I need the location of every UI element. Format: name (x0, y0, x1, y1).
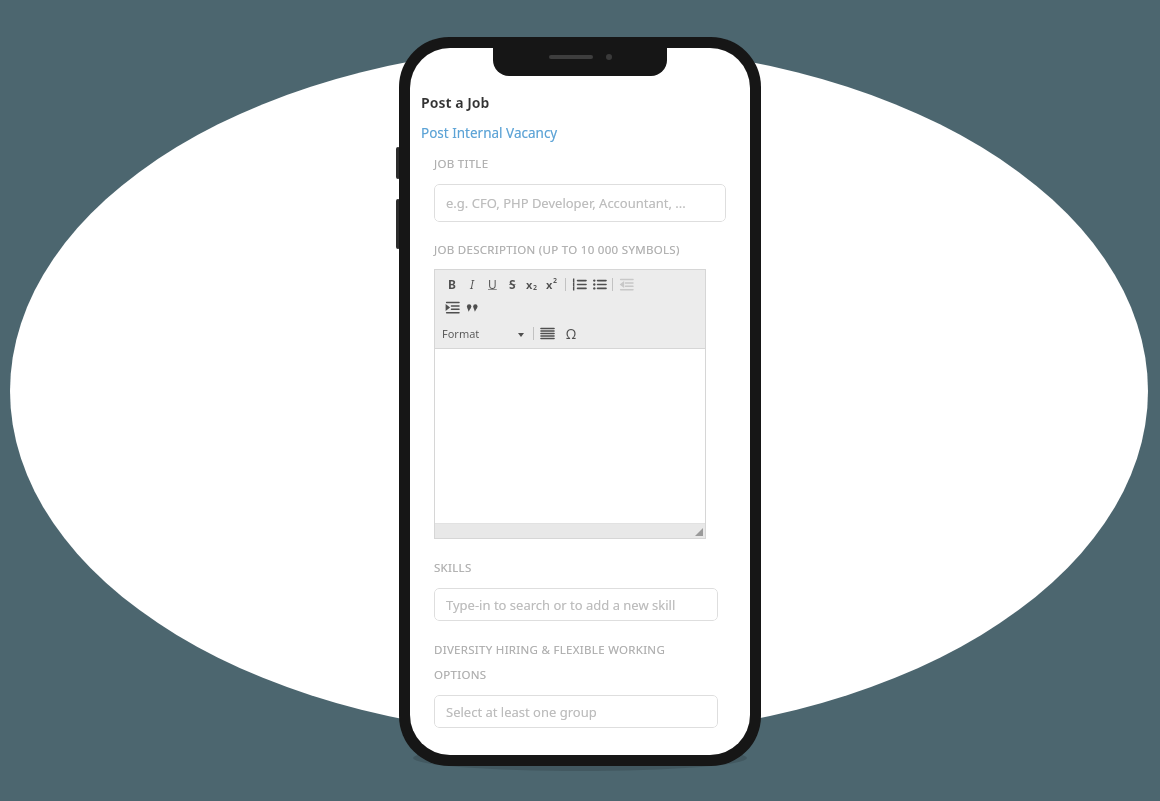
staticText: x (546, 277, 553, 292)
button[interactable]: Type-in to search or to add a new skill (434, 588, 718, 621)
button[interactable]: Bulleted list (589, 274, 609, 294)
staticText: Post a Job (421, 93, 490, 112)
staticText: 2 (533, 283, 538, 293)
button[interactable]: Numbered list (569, 274, 589, 294)
staticText: S (509, 276, 516, 292)
staticText: Type-in to search or to add a new skill (446, 596, 676, 614)
staticText: I (470, 276, 474, 292)
staticText: Select at least one group (446, 703, 597, 721)
staticText: JOB TITLE (434, 156, 489, 172)
staticText: DIVERSITY HIRING & FLEXIBLE WORKING (434, 642, 666, 658)
button[interactable]: Bold (442, 274, 462, 294)
button[interactable]: Increase indent (442, 297, 462, 317)
staticText: e.g. CFO, PHP Developer, Accountant, ... (446, 194, 686, 212)
staticText: B (448, 276, 456, 292)
staticText: OPTIONS (434, 667, 487, 683)
button[interactable]: Strikethrough (502, 274, 522, 294)
button[interactable]: Superscript (542, 274, 562, 294)
button[interactable]: Select at least one group (434, 695, 718, 728)
staticText: Ω (566, 324, 577, 343)
button[interactable]: Format (442, 324, 525, 343)
button[interactable]: Block quote (462, 297, 482, 317)
button[interactable]: Special character (561, 323, 581, 343)
staticText: SKILLS (434, 560, 472, 576)
staticText: JOB DESCRIPTION (UP TO 10 000 SYMBOLS) (434, 242, 680, 258)
staticText: x (526, 277, 533, 292)
staticText: Format (442, 326, 480, 341)
staticText: Post Internal Vacancy (421, 124, 558, 142)
staticText: 2 (553, 276, 558, 286)
button[interactable] (434, 349, 706, 523)
button[interactable]: Post Internal Vacancy (421, 124, 558, 142)
button[interactable]: e.g. CFO, PHP Developer, Accountant, ... (434, 184, 726, 222)
button[interactable]: Decrease indent (616, 274, 636, 294)
button[interactable]: Justify (537, 323, 557, 343)
button[interactable]: Italic (462, 274, 482, 294)
staticText: U (488, 276, 497, 292)
button[interactable]: Subscript (522, 274, 542, 294)
button[interactable]: Underline (482, 274, 502, 294)
